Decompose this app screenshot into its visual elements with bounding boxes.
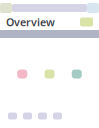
- staticText: Overview: [6, 15, 55, 29]
